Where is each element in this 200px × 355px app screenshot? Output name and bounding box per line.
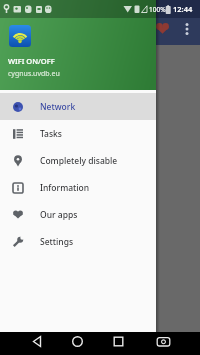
button[interactable] [154, 21, 171, 36]
staticText: Tasks [40, 128, 62, 140]
button[interactable]: Completely disable [0, 147, 156, 174]
button[interactable] [31, 335, 44, 348]
button[interactable] [112, 335, 125, 348]
staticText: 100% [149, 5, 166, 14]
button[interactable]: Settings [0, 228, 156, 255]
staticText: Network [40, 101, 76, 113]
button[interactable] [71, 335, 84, 348]
button[interactable] [9, 25, 31, 47]
button[interactable]: Information [0, 174, 156, 201]
staticText: 12:44 [173, 4, 193, 14]
button[interactable]: Network [0, 93, 156, 120]
button[interactable]: Tasks [0, 120, 156, 147]
staticText: Completely disable [40, 155, 118, 167]
staticText: Information [40, 182, 90, 194]
button[interactable]: Our apps [0, 201, 156, 228]
staticText: WIFI ON/OFF [8, 56, 55, 66]
button[interactable] [156, 335, 171, 348]
staticText: cygnus.uvdb.eu [8, 69, 60, 79]
staticText: Our apps [40, 209, 78, 221]
button[interactable] [182, 20, 192, 36]
staticText: Settings [40, 236, 74, 248]
